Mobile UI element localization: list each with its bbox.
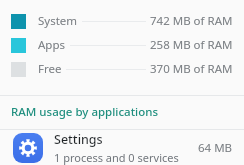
staticText: 1 process and 0 services <box>54 150 179 165</box>
staticText: Free <box>38 61 62 77</box>
button[interactable]: Settings app <box>0 130 244 165</box>
staticText: 742 MB of RAM <box>150 13 233 29</box>
button[interactable]: Settings app <box>13 133 43 163</box>
staticText: 64 MB <box>198 140 233 156</box>
staticText: Apps <box>38 37 66 53</box>
staticText: 258 MB of RAM <box>150 37 233 53</box>
staticText: RAM usage by applications <box>11 104 159 120</box>
button[interactable]: System <box>0 9 244 33</box>
staticText: System <box>38 13 78 29</box>
staticText: 370 MB of RAM <box>150 61 233 77</box>
staticText: Settings <box>54 131 103 148</box>
button[interactable]: Free <box>0 57 244 81</box>
button[interactable]: Apps <box>0 33 244 57</box>
